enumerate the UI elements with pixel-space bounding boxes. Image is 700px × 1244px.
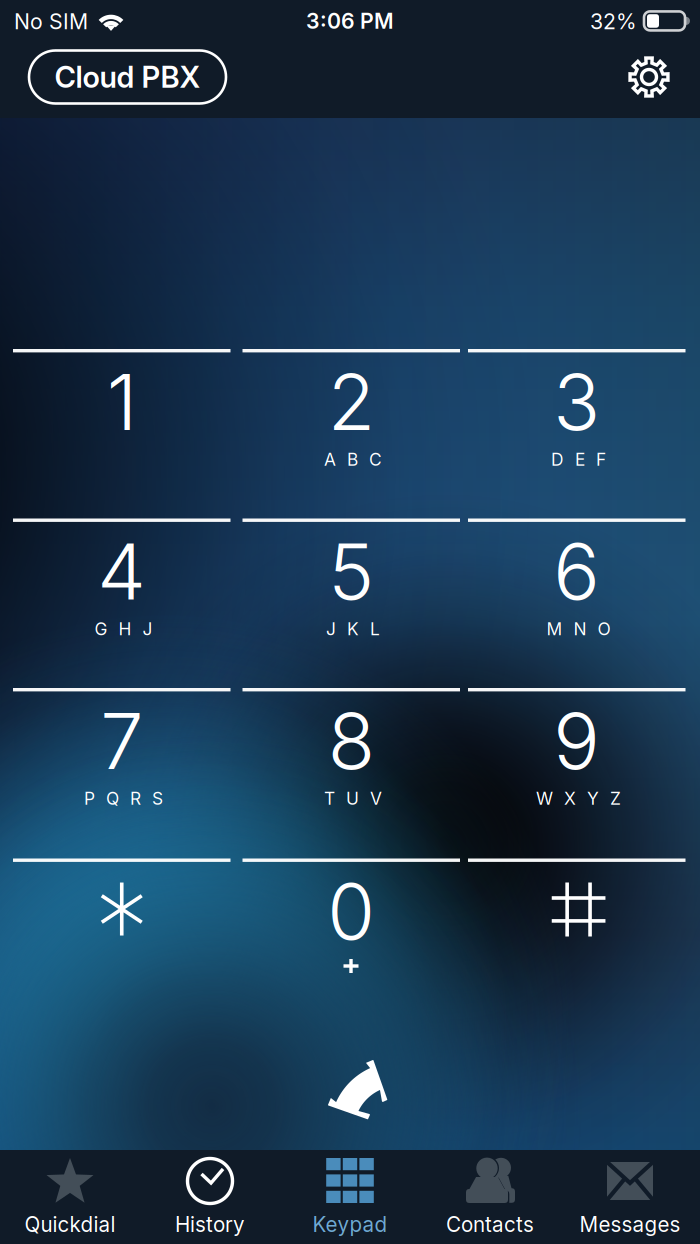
button[interactable]: 4: [13, 518, 230, 688]
button[interactable]: Cloud PBX: [29, 50, 226, 103]
staticText: 5: [328, 524, 374, 618]
staticText: 9: [553, 694, 600, 788]
staticText: History: [175, 1212, 245, 1237]
staticText: 0: [327, 864, 375, 958]
staticText: WXYZ: [536, 788, 621, 809]
staticText: 7: [100, 694, 143, 788]
button[interactable]: 5: [242, 518, 460, 688]
staticText: GHJ: [94, 618, 152, 639]
staticText: 8: [328, 694, 375, 788]
button[interactable]: Quickdial: [0, 1150, 140, 1244]
button[interactable]: 3: [468, 349, 685, 519]
button[interactable]: 7: [13, 688, 230, 858]
staticText: Messages: [579, 1212, 680, 1237]
button[interactable]: Contacts: [420, 1150, 560, 1244]
staticText: 2: [328, 355, 375, 449]
staticText: 6: [553, 524, 600, 618]
staticText: Contacts: [446, 1212, 534, 1237]
button[interactable]: 0: [242, 858, 460, 1028]
staticText: ABC: [324, 449, 382, 470]
staticText: 1: [107, 355, 137, 449]
button[interactable]: Settings: [628, 56, 670, 98]
button[interactable]: 6: [468, 518, 685, 688]
staticText: Quickdial: [24, 1212, 115, 1237]
button[interactable]: [468, 858, 685, 1028]
staticText: Keypad: [312, 1212, 387, 1237]
staticText: TUV: [324, 788, 382, 809]
button[interactable]: Messages: [560, 1150, 700, 1244]
button[interactable]: 1: [13, 349, 230, 519]
staticText: Cloud PBX: [54, 59, 200, 95]
staticText: 4: [97, 524, 146, 618]
staticText: 3:06 PM: [306, 8, 394, 34]
button[interactable]: 2: [242, 349, 460, 519]
button[interactable]: Keypad: [280, 1150, 420, 1244]
staticText: DEF: [551, 449, 606, 470]
staticText: 3: [553, 355, 600, 449]
staticText: 32%: [590, 8, 637, 34]
staticText: PQRS: [84, 788, 163, 809]
staticText: MNO: [546, 618, 610, 639]
button[interactable]: [13, 858, 230, 1028]
staticText: JKL: [326, 618, 380, 639]
button[interactable]: History: [140, 1150, 280, 1244]
button[interactable]: 9: [468, 688, 685, 858]
staticText: No SIM: [14, 8, 88, 34]
button[interactable]: Call: [304, 1036, 396, 1128]
button[interactable]: 8: [242, 688, 460, 858]
